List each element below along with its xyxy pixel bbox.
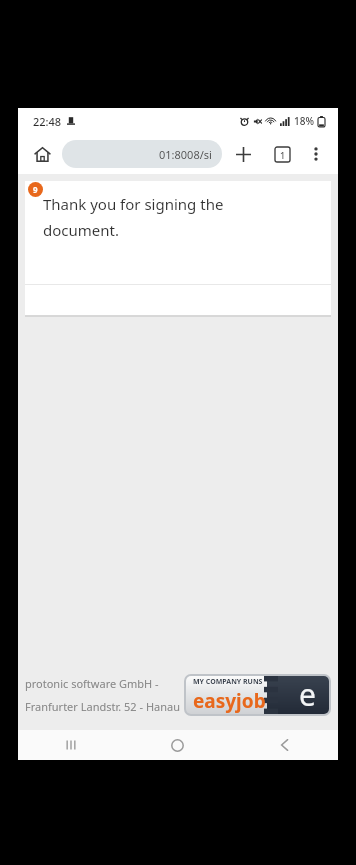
button[interactable]: 01:8008/si [62,140,222,168]
staticText: 1 [280,149,286,161]
staticText: 9 [33,184,38,195]
staticText: Thank you for signing the document. [43,194,271,241]
staticText: easyjob [193,688,266,714]
button[interactable]: Back [231,730,338,760]
button[interactable]: Recent apps [18,730,124,760]
button[interactable]: Tabs [267,139,297,169]
staticText: 22:48 [33,114,62,129]
button[interactable]: New tab [228,139,258,169]
button[interactable]: easyjob [184,674,331,716]
staticText: MY COMPANY RUNS [193,677,263,687]
button[interactable]: Home [26,138,58,170]
staticText: 18% [294,114,314,128]
button[interactable]: Home [124,730,231,760]
button[interactable]: Notification 9 [28,182,43,197]
staticText: e [299,676,316,712]
button[interactable]: More options [302,140,330,168]
staticText: protonic software GmbH - Franfurter Land… [25,676,184,714]
staticText: 01:8008/si [159,147,212,162]
